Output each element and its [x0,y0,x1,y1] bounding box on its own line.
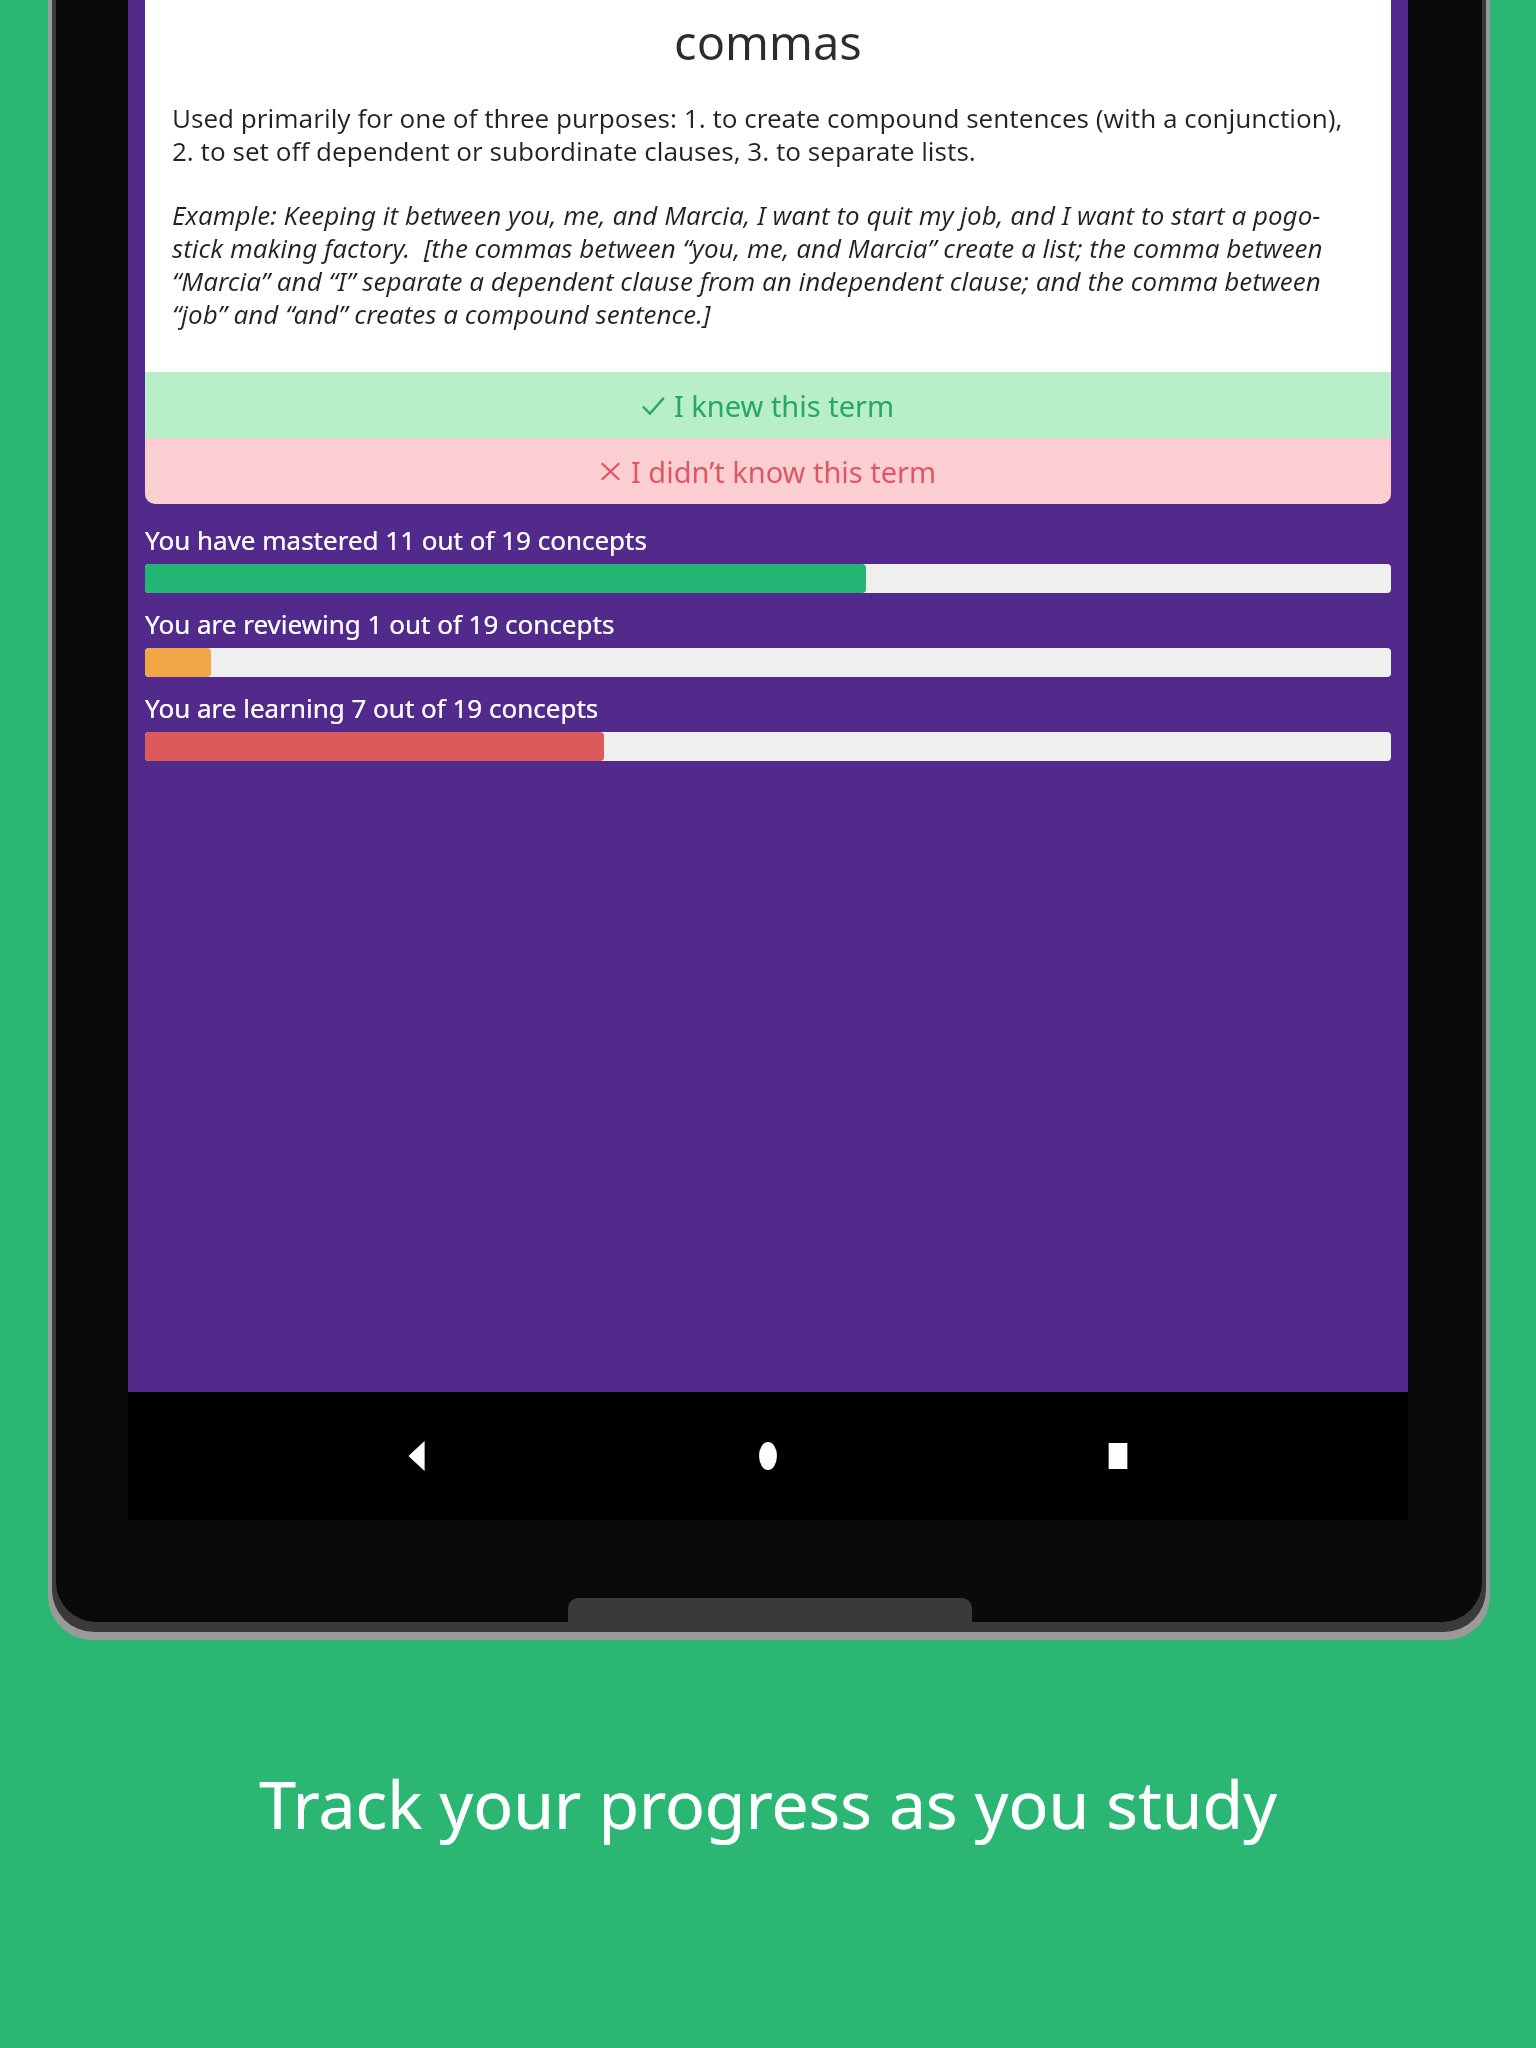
staticText: Track your progress as you study [0,1758,1536,1848]
button[interactable]: Recent apps [1058,1396,1178,1516]
button[interactable]: Back [358,1396,478,1516]
staticText: Example: Keeping it between you, me, and… [172,197,1364,332]
staticText: I didn’t know this term [631,452,937,491]
staticText: commas [172,10,1364,74]
staticText: You have mastered 11 out of 19 concepts [145,522,647,557]
button[interactable]: I didn’t know this term [145,438,1391,504]
staticText: I knew this term [674,386,895,425]
staticText: Used primarily for one of three purposes… [172,100,1364,169]
staticText: You are learning 7 out of 19 concepts [145,690,599,725]
button[interactable]: Home [708,1396,828,1516]
staticText: You are reviewing 1 out of 19 concepts [145,606,615,641]
button[interactable]: I knew this term [145,372,1391,438]
